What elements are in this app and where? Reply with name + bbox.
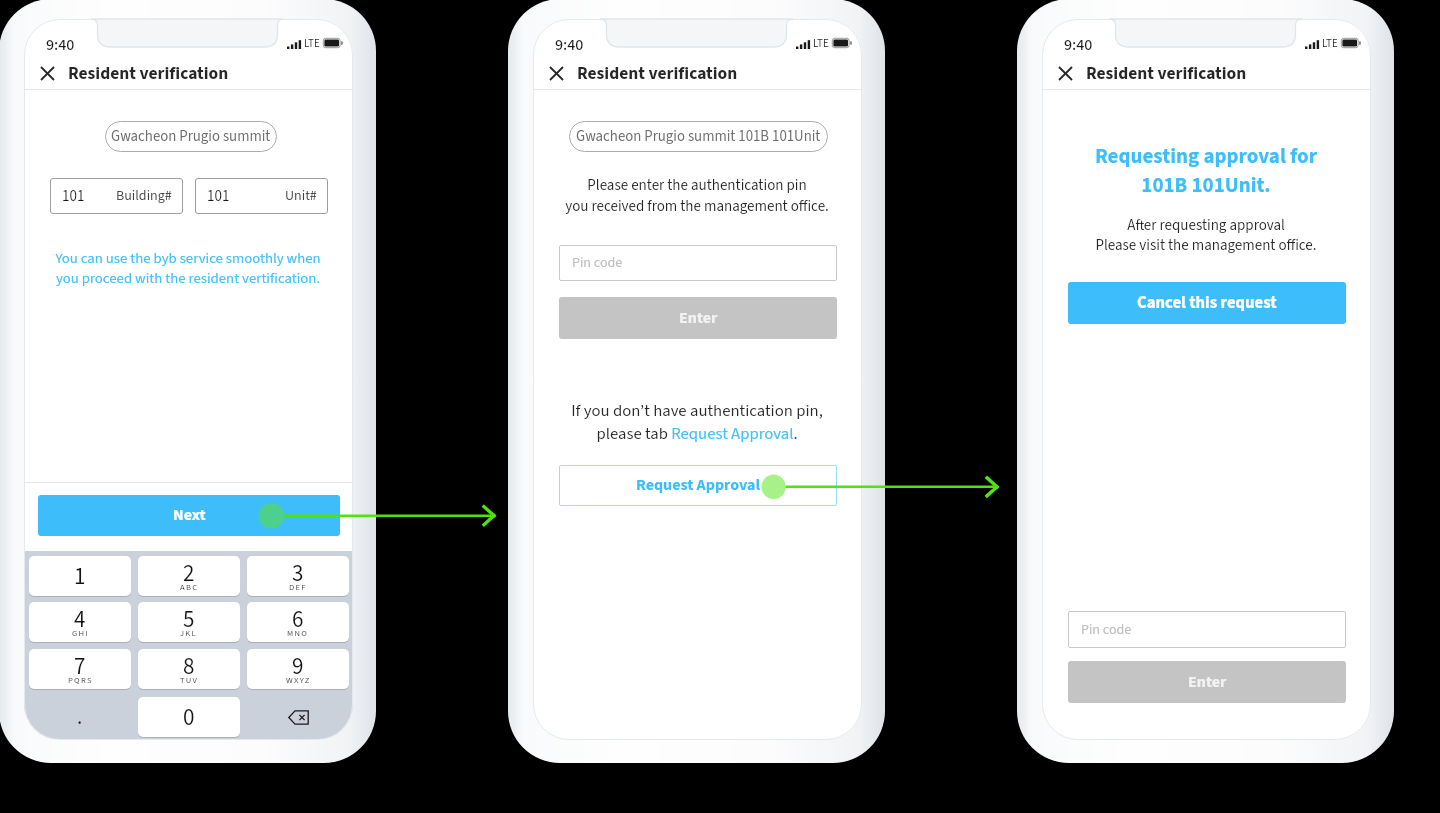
staticText: Resident verification xyxy=(1086,61,1247,86)
staticText: 9:40 xyxy=(1064,34,1093,57)
button[interactable]: Period xyxy=(29,697,131,737)
button[interactable]: Gwacheon Prugio summit xyxy=(105,121,277,152)
staticText: Gwacheon Prugio summit xyxy=(111,126,271,147)
button[interactable]: 101 xyxy=(50,178,183,214)
staticText: Cancel this request xyxy=(1137,291,1277,315)
staticText: Request Approval xyxy=(636,474,761,497)
button[interactable]: Enter xyxy=(1068,661,1346,703)
staticText: LTE xyxy=(1322,36,1338,52)
staticText: LTE xyxy=(813,36,829,52)
button[interactable]: 0 xyxy=(138,697,240,737)
button[interactable]: 7 xyxy=(29,649,131,689)
staticText: LTE xyxy=(304,36,320,52)
staticText: Resident verification xyxy=(577,61,738,86)
staticText: Enter xyxy=(679,307,718,330)
staticText: please tab Request Approval. xyxy=(537,422,857,446)
staticText: 3 xyxy=(292,557,304,590)
staticText: ABC xyxy=(180,581,199,593)
staticText: Requesting approval for 101B 101Unit. xyxy=(1046,141,1366,200)
staticText: Please enter the authentication pin you … xyxy=(537,175,857,217)
staticText: Next xyxy=(173,504,206,527)
button[interactable]: 101 xyxy=(195,178,328,214)
staticText: 7 xyxy=(74,650,86,683)
staticText: 4 xyxy=(74,603,86,636)
button[interactable]: 8 xyxy=(138,649,240,689)
button[interactable]: Pin code xyxy=(559,245,837,281)
staticText: 0 xyxy=(183,701,195,734)
button[interactable]: Next xyxy=(38,495,340,536)
button[interactable]: 3 xyxy=(247,556,349,596)
staticText: 101 xyxy=(62,186,85,207)
staticText: 101 xyxy=(207,186,230,207)
button[interactable]: Pin code xyxy=(1068,611,1346,648)
staticText: 8 xyxy=(183,650,195,683)
staticText: You can use the byb service smoothly whe… xyxy=(28,248,348,289)
staticText: DEF xyxy=(289,581,307,593)
staticText: 5 xyxy=(183,603,195,636)
staticText: MNO xyxy=(287,627,309,639)
button[interactable]: Request Approval xyxy=(559,465,837,506)
staticText: After requesting approval Please visit t… xyxy=(1046,215,1366,256)
staticText: 1 xyxy=(74,560,86,593)
button[interactable]: Close xyxy=(1049,57,1081,89)
staticText: WXYZ xyxy=(286,674,311,686)
staticText: Enter xyxy=(1188,671,1227,694)
staticText: Building# xyxy=(116,186,172,206)
staticText: If you don’t have authentication pin, xyxy=(537,399,857,423)
button[interactable]: Close xyxy=(31,57,63,89)
staticText: 9 xyxy=(292,650,304,683)
button[interactable]: 5 xyxy=(138,602,240,642)
button[interactable]: Backspace xyxy=(247,697,349,737)
staticText: Pin code xyxy=(572,253,623,273)
staticText: 9:40 xyxy=(555,34,584,57)
staticText: Gwacheon Prugio summit 101B 101Unit xyxy=(576,126,821,147)
staticText: 9:40 xyxy=(46,34,75,57)
staticText: . xyxy=(77,702,83,732)
staticText: JKL xyxy=(180,627,198,639)
staticText: Unit# xyxy=(285,186,317,206)
staticText: PQRS xyxy=(68,674,93,686)
button[interactable]: Gwacheon Prugio summit 101B 101Unit xyxy=(569,121,828,152)
button[interactable]: 4 xyxy=(29,602,131,642)
staticText: TUV xyxy=(180,674,199,686)
button[interactable]: 1 xyxy=(29,556,131,596)
staticText: GHI xyxy=(72,627,89,639)
staticText: Pin code xyxy=(1081,620,1132,640)
button[interactable]: 9 xyxy=(247,649,349,689)
staticText: Resident verification xyxy=(68,61,229,86)
button[interactable]: 2 xyxy=(138,556,240,596)
button[interactable]: Cancel this request xyxy=(1068,282,1346,324)
button[interactable]: Close xyxy=(540,57,572,89)
staticText: 6 xyxy=(292,603,304,636)
button[interactable]: Enter xyxy=(559,297,837,339)
button[interactable]: 6 xyxy=(247,602,349,642)
staticText: 2 xyxy=(183,557,195,590)
